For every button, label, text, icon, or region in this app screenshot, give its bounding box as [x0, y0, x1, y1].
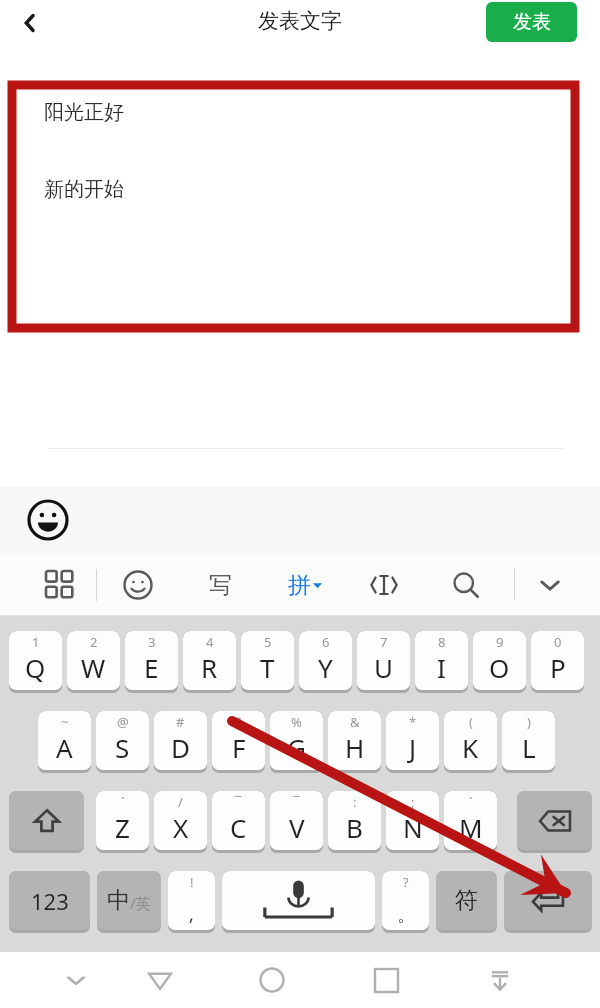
staticText: 写: [209, 571, 232, 600]
button[interactable]: `: [444, 791, 497, 850]
button[interactable]: 2: [67, 631, 120, 690]
button[interactable]: ;: [386, 791, 439, 850]
staticText: :: [353, 793, 357, 811]
staticText: ;: [411, 793, 415, 811]
staticText: ?: [403, 873, 409, 891]
button[interactable]: 发表: [486, 2, 577, 42]
staticText: %: [291, 713, 302, 731]
staticText: /英: [130, 893, 151, 913]
staticText: 123: [31, 886, 69, 916]
staticText: S: [115, 730, 130, 765]
button[interactable]: /: [154, 791, 207, 850]
button[interactable]: 5: [241, 631, 294, 690]
button[interactable]: Backspace: [517, 791, 592, 850]
staticText: 0: [554, 633, 562, 651]
button[interactable]: Shift: [9, 791, 84, 850]
button[interactable]: %: [270, 711, 323, 770]
button[interactable]: Recents: [356, 952, 416, 1008]
staticText: O: [489, 650, 510, 685]
staticText: 。: [397, 904, 415, 927]
button[interactable]: 123: [9, 871, 90, 930]
staticText: N: [403, 810, 423, 845]
staticText: X: [173, 810, 189, 845]
staticText: `: [469, 793, 473, 811]
button[interactable]: ): [502, 711, 555, 770]
button[interactable]: &: [328, 711, 381, 770]
button[interactable]: 4: [183, 631, 236, 690]
staticText: 发表文字: [258, 8, 342, 34]
button[interactable]: 0: [531, 631, 584, 690]
button[interactable]: Back: [130, 952, 190, 1008]
button[interactable]: ´: [96, 791, 149, 850]
button[interactable]: 7: [357, 631, 410, 690]
button[interactable]: 8: [415, 631, 468, 690]
staticText: /: [178, 793, 183, 811]
staticText: ¯: [293, 793, 300, 811]
button[interactable]: :: [328, 791, 381, 850]
staticText: 发表: [513, 10, 551, 34]
staticText: ´: [121, 793, 125, 811]
button[interactable]: Back: [6, 0, 54, 45]
button[interactable]: 拼: [277, 554, 333, 616]
button[interactable]: $: [212, 711, 265, 770]
button[interactable]: 9: [473, 631, 526, 690]
button[interactable]: 6: [299, 631, 352, 690]
button[interactable]: 1: [9, 631, 62, 690]
button[interactable]: Space: [222, 871, 375, 930]
staticText: (: [469, 713, 473, 731]
button[interactable]: Keypad: [34, 554, 86, 616]
staticText: #: [176, 713, 185, 731]
button[interactable]: ?: [382, 871, 429, 930]
button[interactable]: 符: [436, 871, 497, 930]
staticText: ~: [61, 713, 69, 731]
button[interactable]: *: [386, 711, 439, 770]
button[interactable]: Enter: [504, 871, 592, 930]
staticText: 5: [264, 633, 272, 651]
staticText: ‾: [235, 793, 242, 811]
staticText: F: [232, 730, 246, 765]
staticText: ,: [189, 902, 194, 927]
staticText: M: [459, 810, 483, 845]
staticText: Z: [115, 810, 130, 845]
staticText: U: [374, 650, 394, 685]
button[interactable]: Hide: [46, 952, 106, 1008]
staticText: 8: [438, 633, 446, 651]
button[interactable]: !: [168, 871, 215, 930]
button[interactable]: Search: [440, 554, 492, 616]
button[interactable]: @: [96, 711, 149, 770]
button[interactable]: ~: [38, 711, 91, 770]
staticText: 9: [496, 633, 504, 651]
staticText: 1: [32, 633, 40, 651]
button[interactable]: Chinese English toggle: [97, 871, 161, 930]
staticText: 4: [206, 633, 214, 651]
staticText: &: [350, 713, 360, 731]
button[interactable]: 3: [125, 631, 178, 690]
staticText: I: [437, 650, 446, 685]
staticText: 拼: [288, 571, 311, 600]
staticText: Y: [318, 650, 333, 685]
staticText: ): [527, 713, 531, 731]
staticText: 7: [380, 633, 388, 651]
staticText: 符: [455, 886, 478, 915]
staticText: G: [287, 730, 306, 765]
staticText: 2: [90, 633, 98, 651]
button[interactable]: (: [444, 711, 497, 770]
button[interactable]: ‾: [212, 791, 265, 850]
button[interactable]: Emoji: [20, 492, 76, 548]
staticText: 6: [322, 633, 330, 651]
button[interactable]: Hide keyboard: [524, 554, 576, 616]
button[interactable]: Cursor: [358, 554, 410, 616]
staticText: 新的开始: [44, 177, 124, 202]
staticText: W: [81, 650, 106, 685]
button[interactable]: ¯: [270, 791, 323, 850]
button[interactable]: 写: [192, 554, 248, 616]
button[interactable]: Home: [242, 952, 302, 1008]
staticText: D: [171, 730, 190, 765]
staticText: Q: [25, 650, 46, 685]
button[interactable]: #: [154, 711, 207, 770]
staticText: T: [260, 650, 275, 685]
staticText: V: [289, 810, 305, 845]
button[interactable]: Emoticon: [112, 554, 164, 616]
staticText: L: [522, 730, 536, 765]
button[interactable]: More: [470, 952, 530, 1008]
